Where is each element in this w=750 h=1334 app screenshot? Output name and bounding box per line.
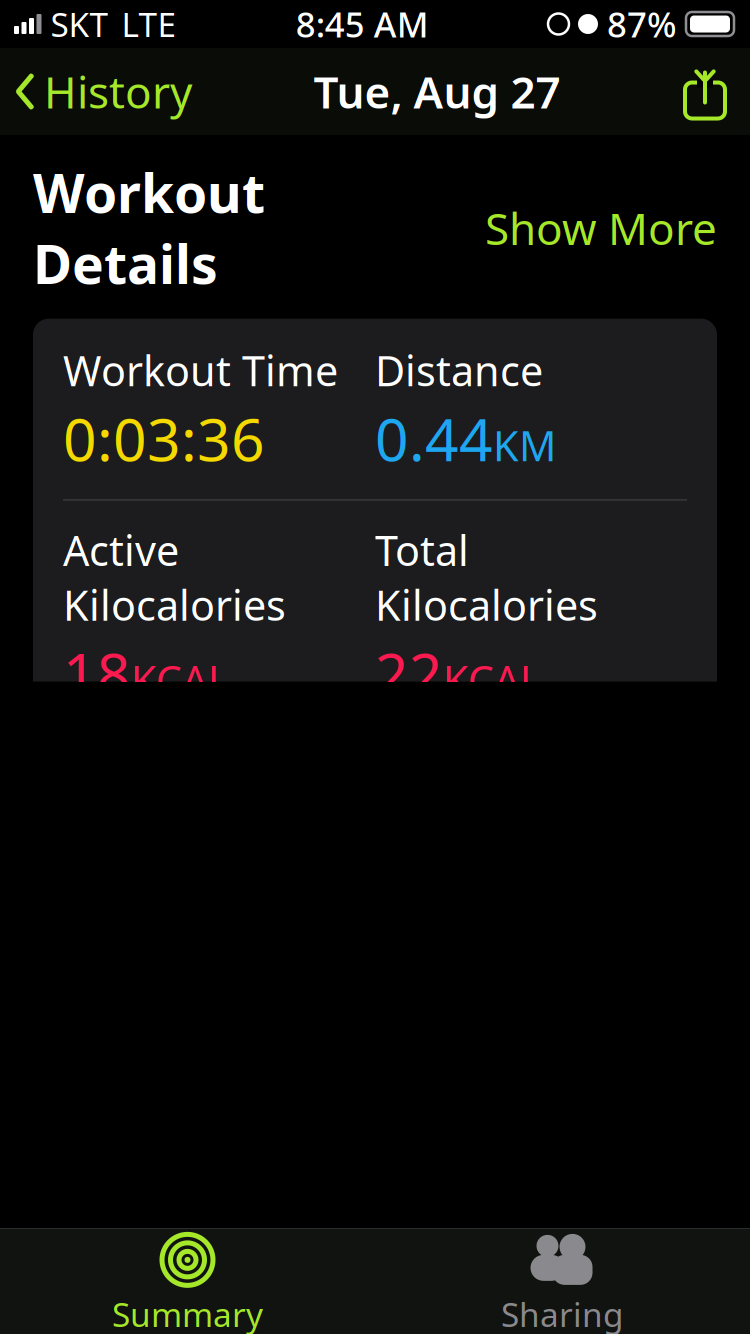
staticText: 0.44 — [375, 399, 493, 477]
staticText: 87% — [607, 1, 677, 47]
staticText: Summary — [112, 1292, 263, 1334]
button[interactable]: Share — [682, 59, 750, 123]
staticText: 18 — [63, 634, 131, 712]
button[interactable]: Summary — [0, 1226, 375, 1334]
staticText: Workout Details — [33, 157, 265, 299]
button[interactable]: Show More — [465, 193, 717, 263]
staticText: History — [44, 62, 192, 121]
staticText: KM — [493, 418, 556, 473]
button[interactable]: History — [0, 54, 192, 129]
staticText: LTE — [121, 2, 176, 46]
staticText: Total Kilocalories — [375, 522, 598, 632]
staticText: 22 — [375, 634, 443, 712]
staticText: SKT — [50, 2, 108, 46]
staticText: Show More — [485, 199, 717, 257]
staticText: KCAL — [443, 652, 542, 707]
staticText: KCAL — [131, 652, 230, 707]
staticText: 0:03:36 — [63, 399, 265, 477]
staticText: Workout Time — [63, 343, 338, 397]
staticText: 8:45 AM — [296, 1, 429, 47]
button[interactable]: Sharing — [375, 1226, 750, 1334]
staticText: Sharing — [501, 1292, 624, 1334]
staticText: Active Kilocalories — [63, 522, 286, 632]
staticText: Distance — [375, 343, 543, 397]
staticText: Tue, Aug 27 — [313, 62, 560, 121]
